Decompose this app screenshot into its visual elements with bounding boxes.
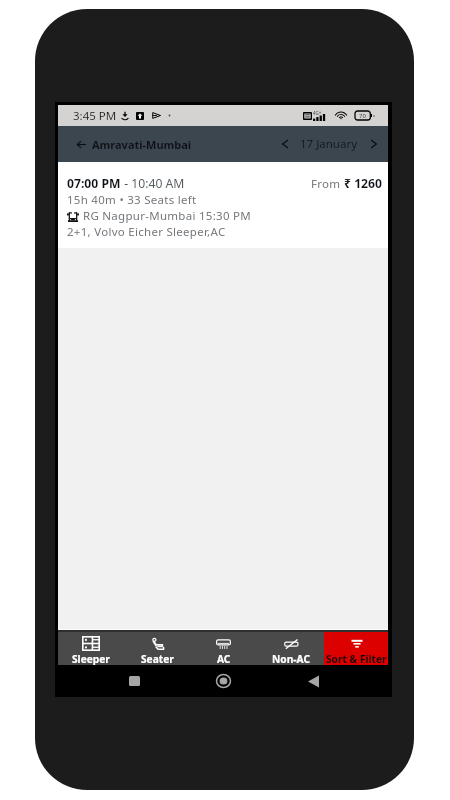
button[interactable]: Home — [209, 667, 237, 695]
staticText: Sort & Filter — [326, 652, 387, 666]
staticText: Seater — [141, 652, 174, 666]
button[interactable]: 07:00 PM — [58, 162, 388, 248]
button[interactable]: Sort & Filter — [324, 632, 388, 665]
button[interactable]: AC — [190, 632, 257, 665]
staticText: 2+1, Volvo Eicher Sleeper,AC — [67, 224, 226, 240]
staticText: 70 — [359, 112, 366, 120]
staticText: AC — [217, 652, 231, 666]
staticText: From — [311, 176, 344, 192]
staticText: 15h 40m • 33 Seats left — [67, 192, 197, 208]
staticText: Sleeper — [72, 652, 110, 666]
staticText: 4G+ — [313, 110, 322, 116]
staticText: ₹ 1260 — [344, 175, 383, 192]
button[interactable]: Sleeper — [58, 632, 124, 665]
button[interactable]: Back — [58, 126, 198, 162]
button[interactable]: Next day — [365, 126, 381, 162]
other: Back — [77, 140, 86, 149]
staticText: - 10:40 AM — [121, 175, 185, 192]
staticText: RG Nagpur-Mumbai 15:30 PM — [83, 208, 251, 224]
button[interactable]: Back — [299, 667, 327, 695]
button[interactable]: Previous day — [277, 126, 293, 162]
button[interactable]: Non-AC — [257, 632, 324, 665]
button[interactable]: Recents — [120, 667, 148, 695]
button[interactable]: 17 January — [293, 136, 365, 152]
staticText: Non-AC — [272, 652, 310, 666]
staticText: 07:00 PM — [67, 175, 121, 192]
button[interactable]: Seater — [124, 632, 190, 665]
staticText: Amravati-Mumbai — [92, 137, 192, 152]
staticText: 3:45 PM — [73, 108, 117, 124]
